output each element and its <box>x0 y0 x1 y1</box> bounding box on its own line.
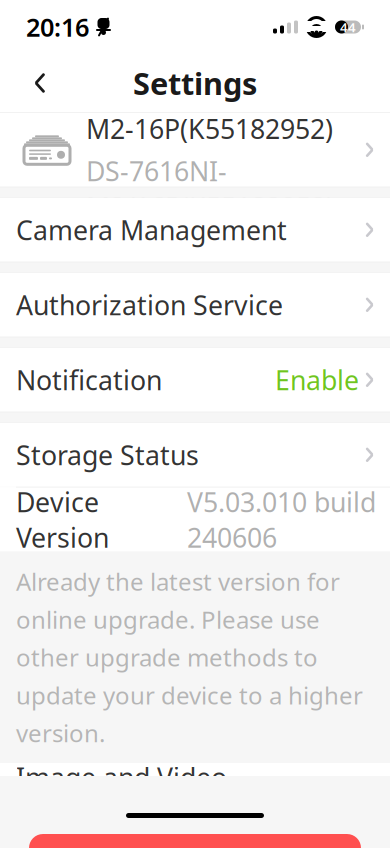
button[interactable]: Camera Management <box>0 198 390 262</box>
staticText: Storage Status <box>16 437 199 472</box>
staticText: 44 <box>340 18 356 36</box>
staticText: DS-7616NI-M2/16P(K55182952) <box>86 153 334 224</box>
button[interactable]: Delete Device <box>29 818 361 848</box>
staticText: Authorization Service <box>16 287 283 322</box>
button[interactable]: Back <box>16 59 64 107</box>
staticText: Enable <box>275 362 359 397</box>
button[interactable]: Notification <box>0 348 390 412</box>
button[interactable]: DS-7616NI-M2-16P(K55182952) <box>0 113 390 187</box>
button[interactable]: Storage Status <box>0 423 390 487</box>
staticText: DS-7616NI-M2-16P(K55182952) <box>86 75 333 146</box>
staticText: Already the latest version for online up… <box>16 566 363 749</box>
staticText: Image and Video Encryption <box>16 759 227 830</box>
staticText: Camera Management <box>16 212 287 247</box>
button[interactable]: Image and Video Encryption <box>0 763 390 827</box>
button[interactable]: Device Version <box>0 488 390 552</box>
staticText: Device Version <box>16 484 109 555</box>
button[interactable]: Authorization Service <box>0 273 390 337</box>
staticText: 20:16 <box>26 10 89 44</box>
staticText: If enabled, your pictures and videos wil… <box>16 841 361 848</box>
staticText: Settings <box>133 63 257 103</box>
staticText: V5.03.010 build 240606 <box>187 484 376 555</box>
staticText: Notification <box>16 362 162 397</box>
